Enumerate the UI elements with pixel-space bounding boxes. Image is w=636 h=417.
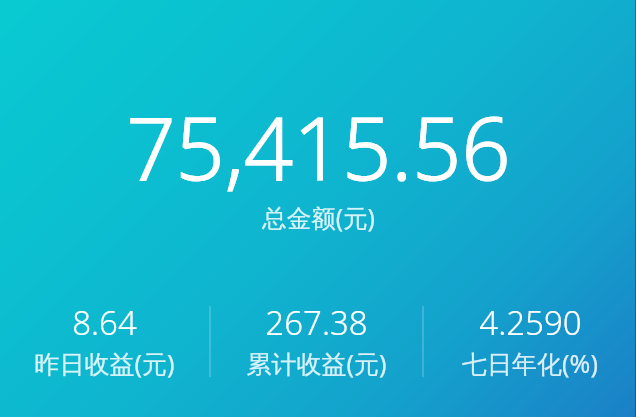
staticText: 累计收益(元) — [246, 346, 387, 380]
button[interactable]: 267.38 — [211, 300, 422, 390]
staticText: 8.64 — [72, 300, 137, 345]
staticText: 七日年化(%) — [462, 346, 598, 380]
staticText: 267.38 — [265, 300, 368, 345]
staticText: 75,415.56 — [126, 88, 511, 205]
button[interactable]: 8.64 — [0, 300, 209, 390]
button[interactable]: 75,415.56 — [0, 0, 636, 260]
staticText: 4.2590 — [479, 300, 582, 345]
staticText: 总金额(元) — [262, 201, 375, 234]
staticText: 昨日收益(元) — [34, 346, 175, 380]
staticText: 75,415.56 — [126, 88, 511, 205]
button[interactable]: 4.2590 — [424, 300, 636, 390]
